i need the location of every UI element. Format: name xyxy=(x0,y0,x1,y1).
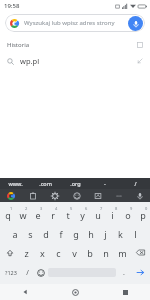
staticText: r xyxy=(51,209,55,221)
button[interactable]: Naklejki xyxy=(66,189,87,202)
staticText: o xyxy=(125,209,131,221)
button[interactable]: Tłumacz xyxy=(87,189,108,202)
staticText: Historia xyxy=(7,41,137,49)
staticText: u xyxy=(95,209,101,221)
button[interactable]: Schowek xyxy=(22,189,44,202)
button[interactable]: v xyxy=(66,243,82,262)
button[interactable]: g xyxy=(68,224,83,243)
staticText: Wyszukaj lub wpisz adres strony xyxy=(24,19,128,27)
button[interactable]: Przejdź xyxy=(130,264,150,281)
staticText: .com xyxy=(39,180,52,187)
staticText: 7 xyxy=(100,206,103,211)
staticText: 8 xyxy=(115,206,118,211)
button[interactable]: Emoji xyxy=(34,264,47,281)
button[interactable]: j xyxy=(98,224,113,243)
button[interactable]: Wyszukiwanie głosowe xyxy=(128,16,143,31)
button[interactable]: . xyxy=(117,264,130,281)
button[interactable]: Historia xyxy=(0,38,150,52)
staticText: x xyxy=(40,247,45,259)
staticText: c xyxy=(56,247,61,259)
staticText: 6 xyxy=(85,206,88,211)
button[interactable]: b xyxy=(82,243,98,262)
button[interactable]: x xyxy=(34,243,50,262)
button[interactable]: w xyxy=(15,205,30,224)
staticText: www. xyxy=(8,180,23,187)
button[interactable]: t xyxy=(60,205,75,224)
button[interactable]: Wyszukaj lub wpisz adres strony xyxy=(5,14,145,32)
button[interactable]: k xyxy=(113,224,128,243)
button[interactable]: Więcej xyxy=(108,189,129,202)
staticText: q xyxy=(5,209,11,221)
staticText: 19:58 xyxy=(4,2,20,10)
staticText: a xyxy=(12,228,18,240)
staticText: .org xyxy=(70,180,81,187)
staticText: b xyxy=(87,247,93,259)
button[interactable]: Google xyxy=(0,189,22,202)
staticText: 2 xyxy=(25,206,28,211)
button[interactable]: q xyxy=(0,205,15,224)
button[interactable]: i xyxy=(105,205,120,224)
staticText: 1 xyxy=(10,206,13,211)
button[interactable]: Shift xyxy=(0,243,19,262)
staticText: f xyxy=(59,228,63,240)
staticText: 5 xyxy=(70,206,73,211)
staticText: g xyxy=(73,228,79,240)
button[interactable]: z xyxy=(19,243,34,262)
staticText: / xyxy=(134,180,137,187)
staticText: . xyxy=(123,268,125,278)
button[interactable]: www. xyxy=(0,178,30,189)
button[interactable]: a xyxy=(7,224,23,243)
button[interactable]: o xyxy=(120,205,135,224)
staticText: l xyxy=(134,228,137,240)
button[interactable]: n xyxy=(98,243,114,262)
button[interactable]: .org xyxy=(60,178,90,189)
staticText: w xyxy=(19,209,27,221)
button[interactable]: e xyxy=(30,205,45,224)
staticText: 9 xyxy=(130,206,133,211)
button[interactable]: / xyxy=(21,264,34,281)
button[interactable]: - xyxy=(90,178,120,189)
staticText: y xyxy=(80,209,85,221)
staticText: h xyxy=(88,228,94,240)
button[interactable]: h xyxy=(83,224,98,243)
staticText: z xyxy=(24,247,29,259)
staticText: j xyxy=(104,228,107,240)
button[interactable]: y xyxy=(75,205,90,224)
staticText: p xyxy=(140,209,146,221)
button[interactable]: l xyxy=(128,224,143,243)
staticText: v xyxy=(72,247,77,259)
button[interactable]: p xyxy=(135,205,150,224)
staticText: wp.pl xyxy=(20,56,137,66)
staticText: / xyxy=(26,268,29,278)
button[interactable]: m xyxy=(114,243,130,262)
button[interactable]: .com xyxy=(30,178,60,189)
button[interactable]: u xyxy=(90,205,105,224)
other: Wstaw xyxy=(137,58,143,64)
button[interactable]: Backspace xyxy=(130,243,150,262)
staticText: t xyxy=(66,209,70,221)
button[interactable]: r xyxy=(45,205,60,224)
button[interactable]: Mikrofon xyxy=(129,189,150,202)
staticText: k xyxy=(118,228,123,240)
staticText: m xyxy=(118,247,127,259)
button[interactable]: s xyxy=(23,224,38,243)
staticText: n xyxy=(103,247,109,259)
staticText: s xyxy=(28,228,33,240)
staticText: d xyxy=(43,228,49,240)
button[interactable]: d xyxy=(38,224,53,243)
button[interactable]: f xyxy=(53,224,68,243)
staticText: ?123 xyxy=(5,269,17,276)
staticText: - xyxy=(104,180,106,187)
staticText: i xyxy=(111,209,114,221)
button[interactable]: Ekran główny xyxy=(50,284,100,300)
button[interactable]: Ostatnie xyxy=(100,284,150,300)
button[interactable]: wp.pl xyxy=(0,52,150,70)
button[interactable]: c xyxy=(50,243,66,262)
button[interactable]: ?123 xyxy=(0,264,21,281)
button[interactable]: / xyxy=(120,178,150,189)
button[interactable]: Wstecz xyxy=(0,284,50,300)
staticText: 0 xyxy=(145,206,148,211)
staticText: e xyxy=(35,209,41,221)
button[interactable]: Ustawienia xyxy=(44,189,66,202)
